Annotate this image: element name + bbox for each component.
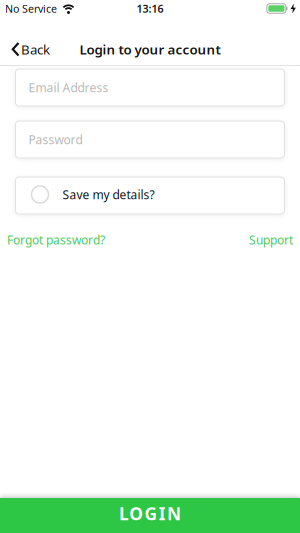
- button[interactable]: Support: [249, 232, 293, 248]
- button[interactable]: LOGIN: [0, 498, 300, 533]
- button[interactable]: Email Address: [0, 69, 300, 106]
- button[interactable]: Forgot password?: [7, 232, 105, 248]
- staticText: Forgot password?: [7, 232, 105, 248]
- staticText: Save my details?: [62, 186, 154, 202]
- staticText: Password: [28, 131, 82, 147]
- staticText: No Service: [5, 1, 57, 16]
- staticText: Back: [21, 41, 50, 58]
- staticText: Support: [249, 232, 293, 248]
- staticText: Email Address: [28, 79, 108, 95]
- staticText: 13:16: [136, 1, 163, 16]
- staticText: Login to your account: [79, 41, 220, 58]
- button[interactable]: Save my details?: [0, 177, 300, 214]
- staticText: LOGIN: [119, 502, 181, 525]
- button[interactable]: Back: [0, 41, 50, 58]
- button[interactable]: Password: [0, 121, 300, 158]
